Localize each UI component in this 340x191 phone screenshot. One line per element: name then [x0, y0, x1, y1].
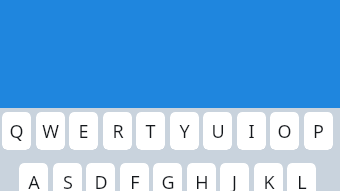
staticText: E: [78, 119, 89, 144]
staticText: G: [161, 170, 175, 191]
staticText: P: [313, 119, 324, 144]
staticText: H: [195, 170, 209, 191]
staticText: W: [42, 119, 59, 144]
staticText: S: [63, 170, 73, 191]
button[interactable]: I: [237, 112, 266, 150]
staticText: R: [112, 119, 124, 144]
button[interactable]: Q: [2, 112, 31, 150]
button[interactable]: H: [187, 163, 216, 191]
button[interactable]: U: [203, 112, 232, 150]
button[interactable]: J: [220, 163, 249, 191]
staticText: Y: [179, 119, 190, 144]
button[interactable]: E: [69, 112, 98, 150]
button[interactable]: S: [53, 163, 82, 191]
button[interactable]: W: [36, 112, 65, 150]
button[interactable]: Y: [170, 112, 199, 150]
staticText: K: [263, 170, 275, 191]
staticText: J: [232, 170, 237, 191]
button[interactable]: L: [287, 163, 316, 191]
button[interactable]: D: [86, 163, 115, 191]
button[interactable]: P: [304, 112, 333, 150]
button[interactable]: G: [153, 163, 182, 191]
staticText: T: [145, 119, 156, 144]
staticText: I: [248, 119, 255, 144]
staticText: D: [94, 170, 108, 191]
button[interactable]: R: [103, 112, 132, 150]
staticText: Q: [9, 119, 24, 144]
button[interactable]: O: [270, 112, 299, 150]
button[interactable]: A: [19, 163, 48, 191]
staticText: O: [277, 119, 292, 144]
staticText: U: [211, 119, 225, 144]
button[interactable]: F: [120, 163, 149, 191]
staticText: A: [28, 170, 40, 191]
staticText: L: [297, 170, 307, 191]
staticText: F: [130, 170, 140, 191]
button[interactable]: T: [136, 112, 165, 150]
button[interactable]: K: [254, 163, 283, 191]
